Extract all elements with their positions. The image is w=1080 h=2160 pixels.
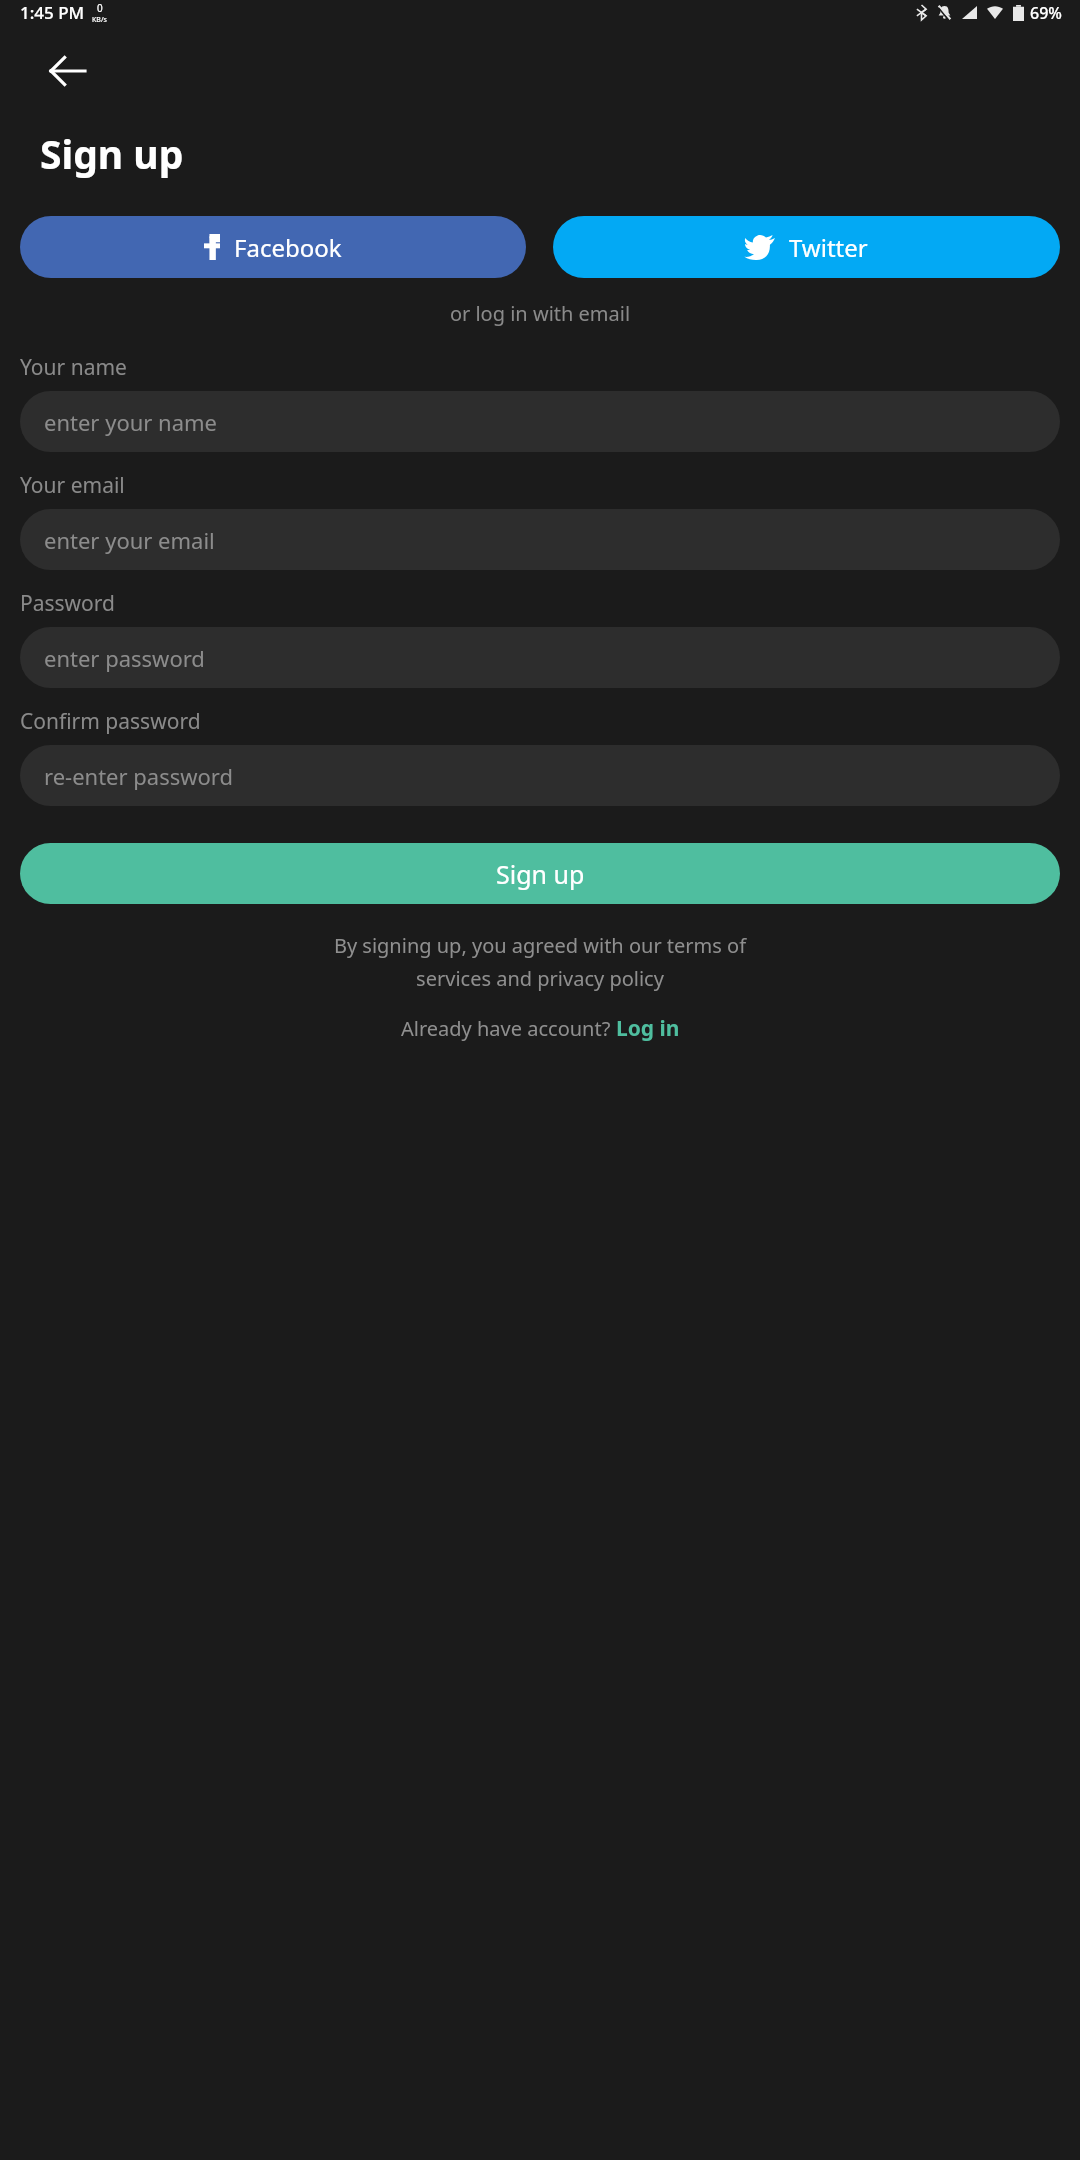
- staticText: Log in: [616, 1014, 680, 1043]
- button[interactable]: Twitter: [553, 216, 1060, 278]
- staticText: enter your name: [44, 407, 218, 437]
- staticText: Already have account?: [401, 1015, 616, 1042]
- staticText: Password: [20, 589, 115, 618]
- button[interactable]: enter password: [20, 627, 1060, 688]
- staticText: Confirm password: [20, 707, 201, 736]
- staticText: or log in with email: [0, 300, 1080, 327]
- staticText: 69%: [1030, 2, 1062, 24]
- button[interactable]: enter your name: [20, 391, 1060, 452]
- staticText: By signing up, you agreed with our terms…: [60, 932, 1020, 992]
- button[interactable]: enter your email: [20, 509, 1060, 570]
- staticText: Facebook: [234, 231, 342, 264]
- staticText: Sign up: [496, 857, 585, 891]
- staticText: 1:45 PM: [20, 1, 85, 24]
- staticText: KB/s: [92, 15, 107, 25]
- staticText: re-enter password: [44, 761, 234, 791]
- staticText: enter password: [44, 643, 205, 673]
- button[interactable]: Back: [40, 43, 96, 99]
- button[interactable]: Facebook: [20, 216, 526, 278]
- staticText: Your email: [20, 471, 125, 500]
- staticText: Sign up: [40, 127, 184, 180]
- button[interactable]: Sign up: [20, 843, 1060, 904]
- staticText: 0: [97, 1, 103, 15]
- button[interactable]: re-enter password: [20, 745, 1060, 806]
- button[interactable]: Log in: [616, 1014, 680, 1043]
- staticText: Your name: [20, 353, 127, 382]
- staticText: enter your email: [44, 525, 215, 555]
- staticText: Twitter: [789, 231, 868, 264]
